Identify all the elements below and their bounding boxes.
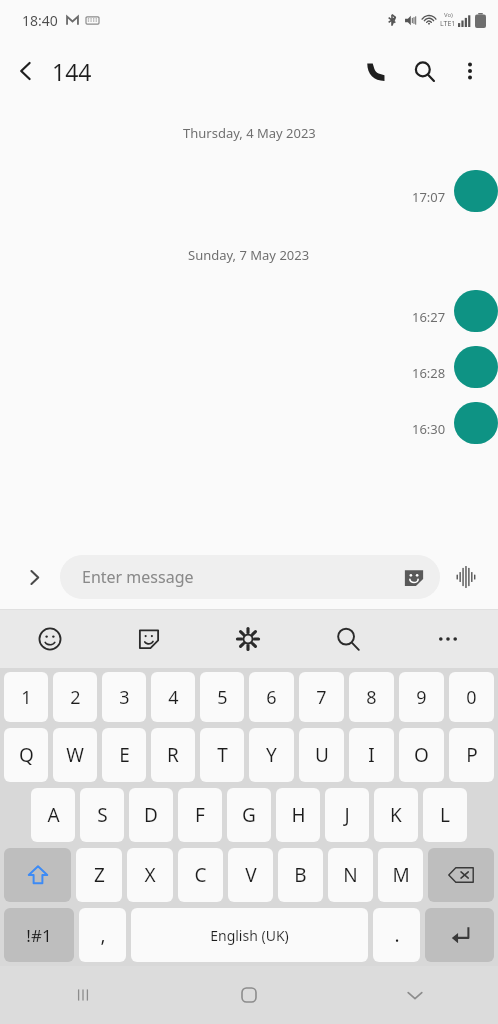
staticText: V [245,862,257,888]
staticText: 9 [416,685,427,710]
staticText: 2 [70,685,81,710]
button[interactable]: English (UK) [131,908,368,962]
staticText: 16:27 [412,308,446,326]
button[interactable]: S [80,788,124,842]
staticText: 1 [21,685,32,710]
staticText: I [368,742,375,768]
button[interactable]: R [151,728,195,782]
button[interactable]: N [328,848,373,902]
button[interactable]: Settings [198,610,298,668]
staticText: LTE1 [440,19,456,29]
staticText: 3 [119,685,130,710]
button[interactable]: A [31,788,75,842]
button[interactable]: Search [298,610,398,668]
button[interactable]: More [398,610,498,668]
button[interactable]: Voice input [448,559,484,595]
button[interactable]: M [378,848,423,902]
button[interactable]: T [200,728,244,782]
button[interactable]: Stickers [400,563,428,591]
staticText: 16:28 [412,364,446,382]
staticText: P [466,742,478,768]
staticText: 16:30 [412,420,446,438]
button[interactable]: !#1 [4,908,74,962]
staticText: !#1 [26,924,52,947]
button[interactable]: 3 [102,672,146,722]
button[interactable]: Expand [14,557,54,597]
button[interactable]: Shift [4,848,71,902]
button[interactable]: Call [352,47,400,95]
button[interactable]: Z [76,848,122,902]
button[interactable]: Message at 17:07 [454,170,498,212]
button[interactable]: Search [400,47,448,95]
staticText: M [392,862,410,888]
button[interactable]: X [127,848,173,902]
button[interactable]: 0 [449,672,494,722]
staticText: 4 [168,685,179,710]
button[interactable]: 5 [200,672,244,722]
button[interactable]: O [399,728,444,782]
staticText: T [217,742,228,768]
staticText: Y [266,742,277,768]
staticText: H [291,802,306,828]
button[interactable]: V [228,848,273,902]
staticText: . [394,922,400,948]
button[interactable]: F [178,788,222,842]
button[interactable]: D [129,788,173,842]
button[interactable]: Message at 16:28 [454,346,498,388]
button[interactable]: Message at 16:30 [454,402,498,444]
staticText: 18:40 [22,11,58,30]
button[interactable]: H [276,788,320,842]
button[interactable]: W [53,728,97,782]
staticText: F [195,802,205,828]
staticText: English (UK) [210,926,289,945]
button[interactable]: Emoji [0,610,99,668]
staticText: 6 [266,685,277,710]
button[interactable]: 1 [4,672,48,722]
button[interactable]: . [373,908,420,962]
button[interactable]: Stickers [99,610,198,668]
button[interactable]: 2 [53,672,97,722]
button[interactable]: Back [0,45,52,97]
button[interactable]: 4 [151,672,195,722]
button[interactable]: U [299,728,344,782]
staticText: Vo) [444,11,453,19]
button[interactable]: G [227,788,271,842]
staticText: B [294,862,307,888]
button[interactable]: Y [249,728,294,782]
staticText: E [119,742,130,768]
staticText: Z [94,862,105,888]
staticText: , [100,922,106,948]
staticText: 17:07 [412,188,446,206]
button[interactable]: C [178,848,223,902]
button[interactable]: E [102,728,146,782]
staticText: D [144,802,158,828]
button[interactable]: 7 [299,672,344,722]
staticText: 7 [316,685,327,710]
button[interactable]: I [349,728,394,782]
button[interactable]: 6 [249,672,294,722]
staticText: Thursday, 4 May 2023 [183,124,316,142]
button[interactable]: P [449,728,494,782]
button[interactable]: Home [166,966,332,1024]
button[interactable]: 8 [349,672,394,722]
button[interactable]: B [278,848,323,902]
staticText: J [344,802,350,828]
button[interactable]: Enter [425,908,494,962]
staticText: 5 [217,685,228,710]
staticText: L [440,802,450,828]
button[interactable]: L [423,788,467,842]
staticText: S [97,802,108,828]
button[interactable]: More options [448,49,492,93]
button[interactable]: Enter message [60,555,440,599]
button[interactable]: Recents [0,966,166,1024]
button[interactable]: K [374,788,418,842]
button[interactable]: Backspace [428,848,494,902]
button[interactable]: 9 [399,672,444,722]
button[interactable]: Q [4,728,48,782]
button[interactable]: Message at 16:27 [454,290,498,332]
staticText: Enter message [82,566,194,588]
button[interactable]: , [79,908,126,962]
staticText: C [194,862,207,888]
button[interactable]: Hide keyboard [332,966,498,1024]
button[interactable]: J [325,788,369,842]
